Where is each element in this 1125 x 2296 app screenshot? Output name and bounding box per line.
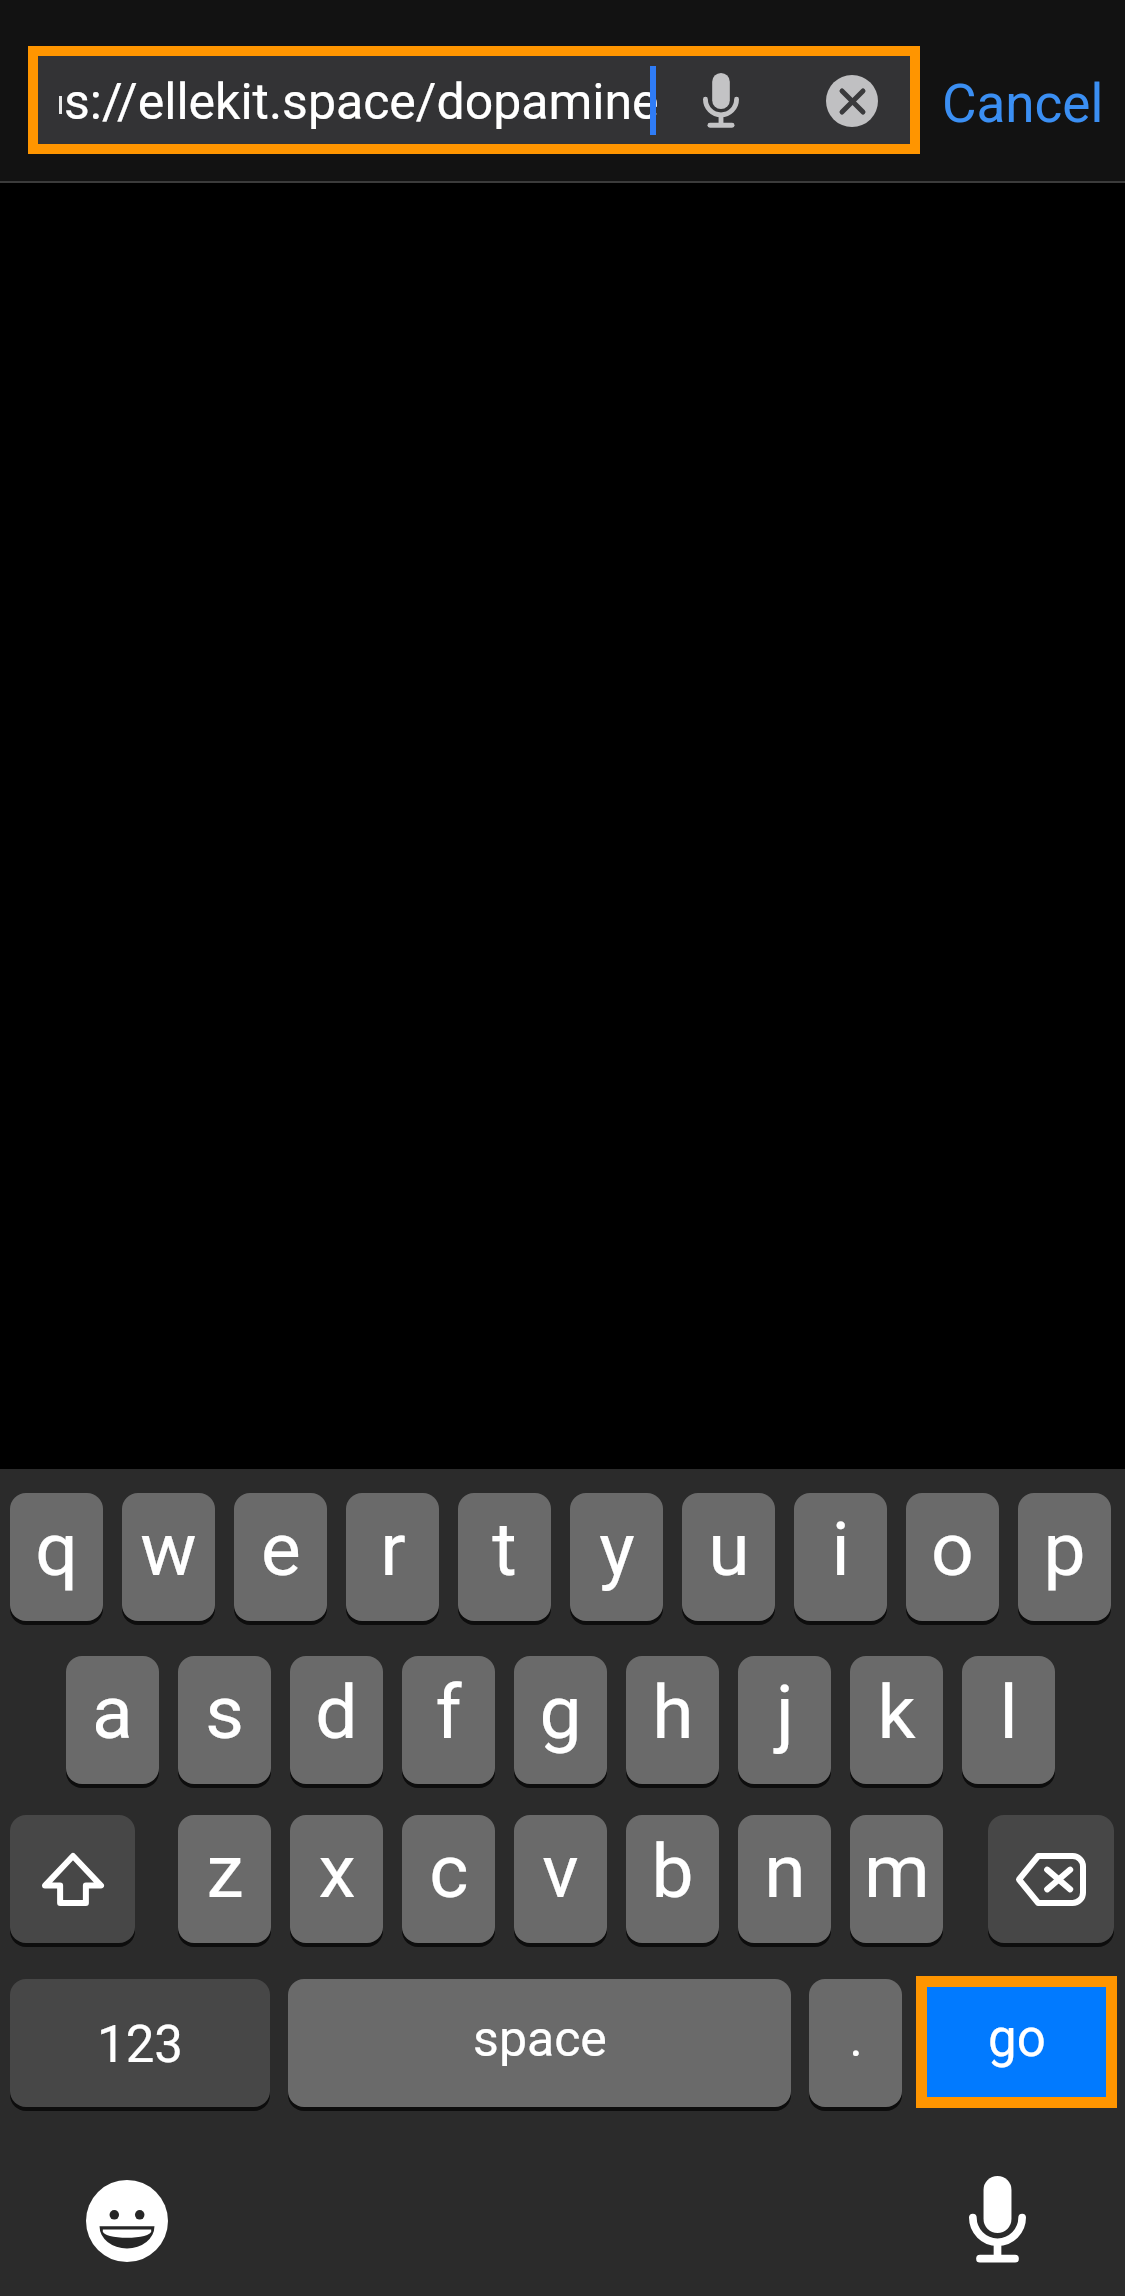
button[interactable]: m xyxy=(850,1815,943,1947)
button[interactable]: 123 xyxy=(10,1979,270,2111)
staticText: x xyxy=(318,1827,356,1915)
staticText: i xyxy=(831,1505,850,1593)
button[interactable]: q xyxy=(10,1493,103,1625)
staticText: a xyxy=(92,1668,133,1756)
button[interactable]: a xyxy=(66,1656,159,1788)
staticText: t xyxy=(492,1505,517,1593)
button[interactable]: c xyxy=(402,1815,495,1947)
button[interactable]: t xyxy=(458,1493,551,1625)
button[interactable]: Backspace xyxy=(988,1815,1114,1947)
button[interactable]: u xyxy=(682,1493,775,1625)
button[interactable]: e xyxy=(234,1493,327,1625)
button[interactable]: Emoji xyxy=(70,2164,184,2278)
staticText: space xyxy=(473,2010,607,2069)
button[interactable]: l xyxy=(962,1656,1055,1788)
button[interactable]: space xyxy=(288,1979,791,2111)
staticText: s xyxy=(205,1668,244,1756)
staticText: h xyxy=(652,1668,694,1756)
button[interactable]: h xyxy=(626,1656,719,1788)
button[interactable]: Shift xyxy=(10,1815,135,1947)
button[interactable]: k xyxy=(850,1656,943,1788)
button[interactable]: Clear text xyxy=(826,75,878,127)
staticText: m xyxy=(864,1827,930,1915)
staticText: 123 xyxy=(97,2015,183,2075)
button[interactable]: b xyxy=(626,1815,719,1947)
staticText: b xyxy=(651,1827,694,1915)
button[interactable]: x xyxy=(290,1815,383,1947)
staticText: v xyxy=(542,1827,579,1915)
staticText: q xyxy=(35,1505,78,1593)
button[interactable]: s://ellekit.space/dopamine xyxy=(38,56,910,144)
staticText: n xyxy=(764,1827,806,1915)
button[interactable]: r xyxy=(346,1493,439,1625)
button[interactable]: . xyxy=(809,1979,902,2111)
staticText: w xyxy=(140,1505,197,1593)
button[interactable]: g xyxy=(514,1656,607,1788)
staticText: d xyxy=(315,1668,358,1756)
staticText: u xyxy=(708,1505,750,1593)
staticText: c xyxy=(429,1827,469,1915)
staticText: l xyxy=(999,1668,1018,1756)
staticText: Cancel xyxy=(942,73,1104,135)
staticText: go xyxy=(988,2009,1046,2069)
button[interactable]: w xyxy=(122,1493,215,1625)
staticText: p xyxy=(1043,1505,1086,1593)
staticText: f xyxy=(435,1668,462,1756)
staticText: k xyxy=(877,1668,916,1756)
button[interactable]: d xyxy=(290,1656,383,1788)
staticText: o xyxy=(931,1505,974,1593)
staticText: e xyxy=(261,1505,301,1593)
button[interactable]: go xyxy=(927,1987,1106,2097)
staticText: y xyxy=(599,1505,635,1593)
button[interactable]: i xyxy=(794,1493,887,1625)
staticText: r xyxy=(380,1505,406,1593)
staticText: j xyxy=(776,1668,794,1756)
button[interactable]: Voice search xyxy=(702,70,740,130)
button[interactable]: y xyxy=(570,1493,663,1625)
button[interactable]: s xyxy=(178,1656,271,1788)
button[interactable]: z xyxy=(178,1815,271,1947)
staticText: g xyxy=(539,1668,582,1756)
button[interactable]: Cancel xyxy=(942,73,1104,135)
button[interactable]: o xyxy=(906,1493,999,1625)
button[interactable]: j xyxy=(738,1656,831,1788)
button[interactable]: f xyxy=(402,1656,495,1788)
button[interactable]: Voice input xyxy=(939,2161,1055,2277)
button[interactable]: v xyxy=(514,1815,607,1947)
staticText: . xyxy=(849,2010,863,2069)
button[interactable]: p xyxy=(1018,1493,1111,1625)
staticText: s://ellekit.space/dopamine xyxy=(64,73,659,132)
staticText: z xyxy=(206,1827,244,1915)
button[interactable]: n xyxy=(738,1815,831,1947)
